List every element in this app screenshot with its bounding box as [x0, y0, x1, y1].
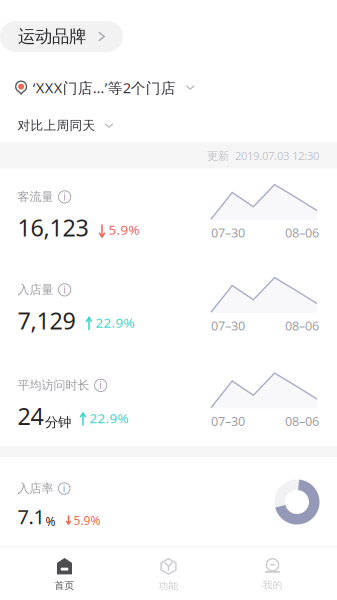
staticText: 7,129 — [17, 304, 75, 336]
staticText: 07–30 — [211, 317, 245, 334]
staticText: 对比上周同天 — [17, 117, 95, 133]
staticText: i — [63, 283, 66, 296]
staticText: 5.9% — [108, 221, 139, 239]
staticText: 我的 — [262, 579, 282, 591]
staticText: 功能 — [158, 580, 178, 592]
staticText: 07–30 — [211, 412, 245, 430]
staticText: 分钟 — [45, 414, 71, 431]
staticText: 平均访问时长 — [17, 378, 89, 393]
button[interactable]: 对比上周同天 — [0, 118, 113, 132]
staticText: 08–06 — [285, 412, 319, 430]
staticText: 运动品牌 — [18, 26, 86, 47]
staticText: 入店率 — [17, 481, 53, 496]
staticText: 首页 — [54, 579, 74, 592]
button[interactable]: ‘XXX门店…’等2个门店 — [0, 79, 195, 95]
staticText: 07–30 — [211, 224, 245, 241]
staticText: 08–06 — [285, 317, 319, 334]
button[interactable]: 我的 — [220, 547, 324, 600]
button[interactable]: 首页 — [12, 547, 116, 600]
staticText: 22.9% — [89, 409, 128, 427]
staticText: 客流量 — [17, 189, 53, 204]
staticText: i — [63, 481, 66, 495]
staticText: 入店量 — [17, 282, 53, 297]
staticText: % — [45, 513, 55, 530]
button[interactable]: 运动品牌 — [0, 21, 123, 52]
staticText: 22.9% — [95, 314, 134, 332]
staticText: 7.1 — [17, 503, 44, 530]
button[interactable]: 功能 — [116, 547, 220, 600]
staticText: 24 — [17, 400, 43, 432]
staticText: 更新 2019.07.03 12:30 — [207, 148, 319, 163]
staticText: 08–06 — [285, 224, 319, 241]
staticText: i — [99, 378, 102, 392]
staticText: 5.9% — [73, 512, 100, 529]
staticText: ‘XXX门店…’等2个门店 — [33, 77, 176, 97]
staticText: i — [63, 190, 66, 203]
staticText: 16,123 — [17, 211, 88, 243]
